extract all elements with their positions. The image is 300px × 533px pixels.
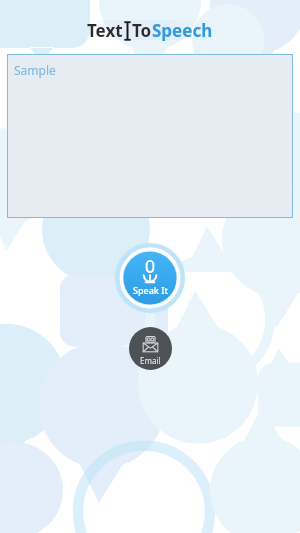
staticText: Sample [14,62,56,78]
button[interactable]: Email [129,327,172,370]
staticText: Speak It [133,284,168,296]
staticText: Text [87,19,123,42]
staticText: To [132,19,152,42]
button[interactable]: Speak It [112,240,188,316]
staticText: Speech [152,19,213,42]
staticText: Email [140,355,161,366]
button[interactable]: Sample [7,54,293,218]
